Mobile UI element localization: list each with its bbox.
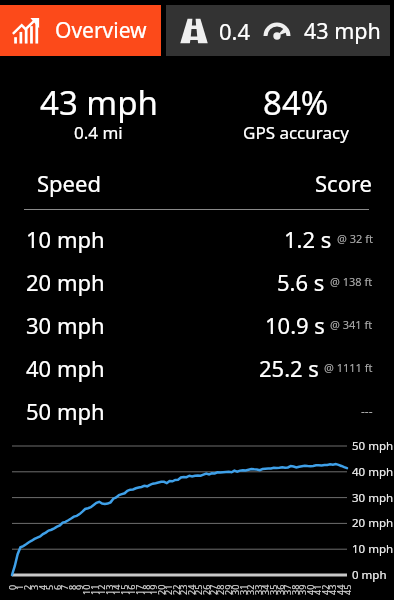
staticText: 1.2 s	[284, 224, 332, 254]
staticText: 50 mph	[26, 396, 105, 426]
staticText: GPS accuracy	[243, 121, 349, 144]
staticText: Speed	[37, 168, 101, 198]
staticText: 20 mph	[26, 267, 105, 297]
staticText: @ 1111 ft	[324, 360, 373, 375]
button[interactable]: 50 mph	[26, 389, 373, 432]
staticText: Overview	[55, 16, 147, 45]
button[interactable]: Distance	[166, 5, 390, 56]
staticText: @ 138 ft	[330, 274, 373, 289]
staticText: 40 mph	[26, 353, 105, 383]
staticText: 10.9 s	[265, 310, 325, 340]
button[interactable]: 30 mph	[26, 303, 373, 346]
staticText: 25.2 s	[259, 353, 319, 383]
staticText: 0.4	[219, 16, 251, 46]
button[interactable]: 10 mph	[26, 217, 373, 260]
staticText: 0.4 mi	[74, 121, 123, 144]
other: Speed	[261, 15, 293, 47]
staticText: ---	[361, 403, 373, 419]
staticText: 43 mph	[40, 80, 158, 125]
staticText: @ 32 ft	[337, 231, 373, 246]
button[interactable]: 40 mph	[26, 346, 373, 389]
button[interactable]: Overview	[0, 5, 161, 56]
other: Distance	[178, 15, 210, 47]
staticText: @ 341 ft	[330, 317, 373, 332]
staticText: 10 mph	[26, 224, 105, 254]
staticText: 43 mph	[304, 16, 381, 45]
staticText: Score	[315, 168, 373, 198]
staticText: 5.6 s	[277, 267, 325, 297]
staticText: 30 mph	[26, 310, 105, 340]
button[interactable]: 20 mph	[26, 260, 373, 303]
staticText: 84%	[263, 80, 329, 125]
